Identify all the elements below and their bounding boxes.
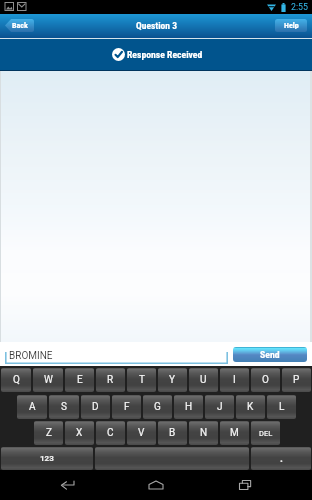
button[interactable]: 123: [1, 447, 93, 470]
staticText: G: [154, 401, 161, 413]
staticText: Back: [12, 21, 28, 30]
staticText: E: [77, 374, 83, 386]
button[interactable]: Back: [5, 19, 34, 32]
button[interactable]: Z: [34, 421, 63, 445]
staticText: O: [262, 374, 269, 386]
staticText: D: [92, 401, 99, 413]
staticText: P: [293, 374, 300, 386]
staticText: K: [247, 401, 254, 413]
button[interactable]: .: [251, 447, 311, 470]
staticText: DEL: [259, 429, 273, 438]
staticText: I: [233, 374, 236, 386]
button[interactable]: Help: [275, 19, 307, 32]
staticText: R: [107, 374, 114, 386]
button[interactable]: Q: [1, 368, 31, 392]
button[interactable]: Recent apps: [223, 472, 267, 498]
button[interactable]: I: [220, 368, 249, 392]
button[interactable]: Send: [233, 347, 307, 362]
staticText: Question 3: [136, 20, 177, 31]
staticText: Response Received: [127, 49, 203, 60]
button[interactable]: [95, 447, 249, 470]
staticText: A: [29, 401, 36, 413]
button[interactable]: BROMINE: [5, 349, 228, 364]
button[interactable]: Home: [134, 472, 178, 498]
button[interactable]: O: [251, 368, 280, 392]
button[interactable]: C: [96, 421, 125, 445]
staticText: Z: [46, 427, 52, 439]
staticText: U: [200, 374, 207, 386]
button[interactable]: X: [65, 421, 94, 445]
staticText: BROMINE: [9, 350, 53, 362]
button[interactable]: Y: [158, 368, 187, 392]
staticText: Y: [169, 374, 176, 386]
button[interactable]: J: [205, 395, 234, 419]
button[interactable]: A: [17, 395, 47, 419]
button[interactable]: S: [49, 395, 79, 419]
button[interactable]: V: [127, 421, 156, 445]
button[interactable]: DEL: [251, 421, 280, 445]
button[interactable]: W: [33, 368, 63, 392]
button[interactable]: M: [220, 421, 249, 445]
staticText: M: [230, 427, 239, 439]
button[interactable]: F: [112, 395, 141, 419]
staticText: V: [138, 427, 145, 439]
staticText: W: [44, 374, 53, 386]
button[interactable]: T: [127, 368, 156, 392]
button[interactable]: E: [65, 368, 94, 392]
button[interactable]: P: [282, 368, 311, 392]
button[interactable]: Back: [45, 472, 89, 498]
staticText: 2:55: [291, 2, 308, 12]
staticText: Help: [284, 21, 299, 30]
staticText: C: [107, 427, 114, 439]
staticText: S: [61, 401, 67, 413]
button[interactable]: N: [189, 421, 218, 445]
staticText: Q: [13, 374, 20, 386]
staticText: .: [280, 453, 283, 465]
button[interactable]: G: [143, 395, 172, 419]
staticText: 123: [40, 454, 54, 463]
button[interactable]: K: [236, 395, 265, 419]
staticText: X: [76, 427, 83, 439]
button[interactable]: B: [158, 421, 187, 445]
staticText: H: [185, 401, 193, 413]
staticText: N: [200, 427, 208, 439]
button[interactable]: L: [267, 395, 296, 419]
button[interactable]: D: [81, 395, 110, 419]
staticText: B: [169, 427, 176, 439]
staticText: F: [124, 401, 130, 413]
button[interactable]: H: [174, 395, 203, 419]
button[interactable]: R: [96, 368, 125, 392]
staticText: L: [279, 401, 285, 413]
button[interactable]: U: [189, 368, 218, 392]
staticText: Send: [260, 349, 280, 360]
staticText: J: [217, 401, 223, 413]
staticText: T: [139, 374, 145, 386]
